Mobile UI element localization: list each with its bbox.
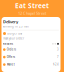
staticText: Eat Street	[15, 1, 49, 10]
staticText: Wallet	[7, 63, 15, 66]
staticText: 3	[57, 48, 59, 51]
button[interactable]: Wallet	[1, 61, 60, 68]
staticText: Arriving in 25 min	[3, 25, 29, 28]
staticText: 7	[57, 55, 59, 59]
staticText: Recent	[3, 42, 13, 46]
staticText: Delivery	[3, 19, 18, 24]
staticText: 12 Chapel Street	[18, 10, 46, 16]
staticText: Burger Bar	[7, 32, 22, 35]
button[interactable]: Orders	[1, 46, 60, 53]
staticText: Orders	[7, 48, 16, 51]
staticText: Track your order	[3, 37, 24, 40]
staticText: $24	[53, 63, 59, 66]
staticText: Offers	[7, 55, 15, 59]
button[interactable]: Offers	[1, 53, 60, 61]
